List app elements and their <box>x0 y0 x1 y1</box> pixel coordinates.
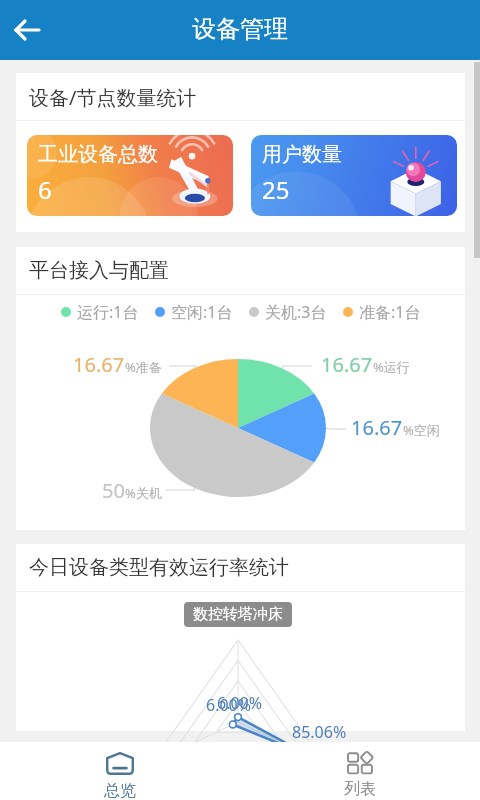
staticText: %关机 <box>125 484 162 502</box>
staticText: 25 <box>262 173 290 206</box>
staticText: 16.67 <box>351 414 403 441</box>
staticText: 准备:1台 <box>359 301 421 323</box>
button[interactable]: 用户数量 <box>251 135 457 216</box>
staticText: 今日设备类型有效运行率统计 <box>29 555 289 580</box>
staticText: 6 <box>38 173 52 206</box>
staticText: 工业设备总数 <box>38 142 158 167</box>
staticText: 设备/节点数量统计 <box>29 84 197 111</box>
staticText: 6.00% <box>206 694 252 716</box>
staticText: 设备管理 <box>192 14 288 44</box>
staticText: 关机:3台 <box>265 301 327 323</box>
staticText: 总览 <box>104 781 136 800</box>
staticText: 6.00% <box>217 692 263 714</box>
staticText: 运行:1台 <box>77 301 139 323</box>
staticText: %运行 <box>373 358 410 376</box>
staticText: 数控转塔冲床 <box>193 605 283 624</box>
staticText: 用户数量 <box>262 142 342 167</box>
staticText: %准备 <box>125 358 162 376</box>
staticText: 16.67 <box>73 351 125 378</box>
staticText: 列表 <box>344 779 376 799</box>
button[interactable]: Back <box>4 6 52 54</box>
staticText: %空闲 <box>403 421 440 439</box>
button[interactable]: 总览 <box>0 742 240 800</box>
button[interactable]: 工业设备总数 <box>27 135 233 216</box>
staticText: 50 <box>102 477 125 504</box>
staticText: 平台接入与配置 <box>29 258 169 283</box>
staticText: 85.06% <box>292 721 347 743</box>
staticText: 16.67 <box>321 351 373 378</box>
button[interactable]: 列表 <box>240 742 480 800</box>
staticText: 空闲:1台 <box>171 301 233 323</box>
